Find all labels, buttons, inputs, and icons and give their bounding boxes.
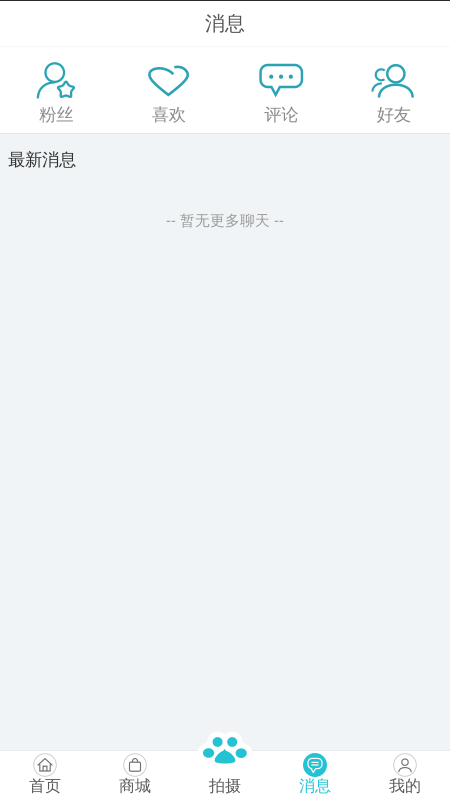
button[interactable]: 商城 (90, 750, 180, 800)
staticText: 我的 (389, 776, 421, 796)
staticText: 粉丝 (39, 104, 73, 125)
button[interactable]: 首页 (0, 750, 90, 800)
button[interactable]: 喜欢 (112, 47, 225, 134)
staticText: 消息 (205, 11, 245, 36)
staticText: 评论 (264, 104, 298, 125)
staticText: 首页 (29, 776, 61, 796)
button[interactable]: 好友 (337, 47, 450, 134)
button[interactable]: 拍摄 (196, 732, 254, 778)
staticText: 商城 (119, 776, 151, 796)
button[interactable]: 粉丝 (0, 47, 112, 134)
staticText: 最新消息 (8, 149, 76, 170)
staticText: 好友 (377, 104, 411, 125)
button[interactable]: 拍摄 (180, 750, 270, 800)
button[interactable]: 我的 (360, 750, 450, 800)
button[interactable]: 消息 (270, 750, 360, 800)
staticText: 消息 (299, 776, 331, 796)
staticText: 拍摄 (209, 776, 241, 796)
staticText: 喜欢 (152, 104, 186, 125)
staticText: -- 暂无更多聊天 -- (166, 210, 284, 230)
button[interactable]: 评论 (225, 47, 337, 134)
